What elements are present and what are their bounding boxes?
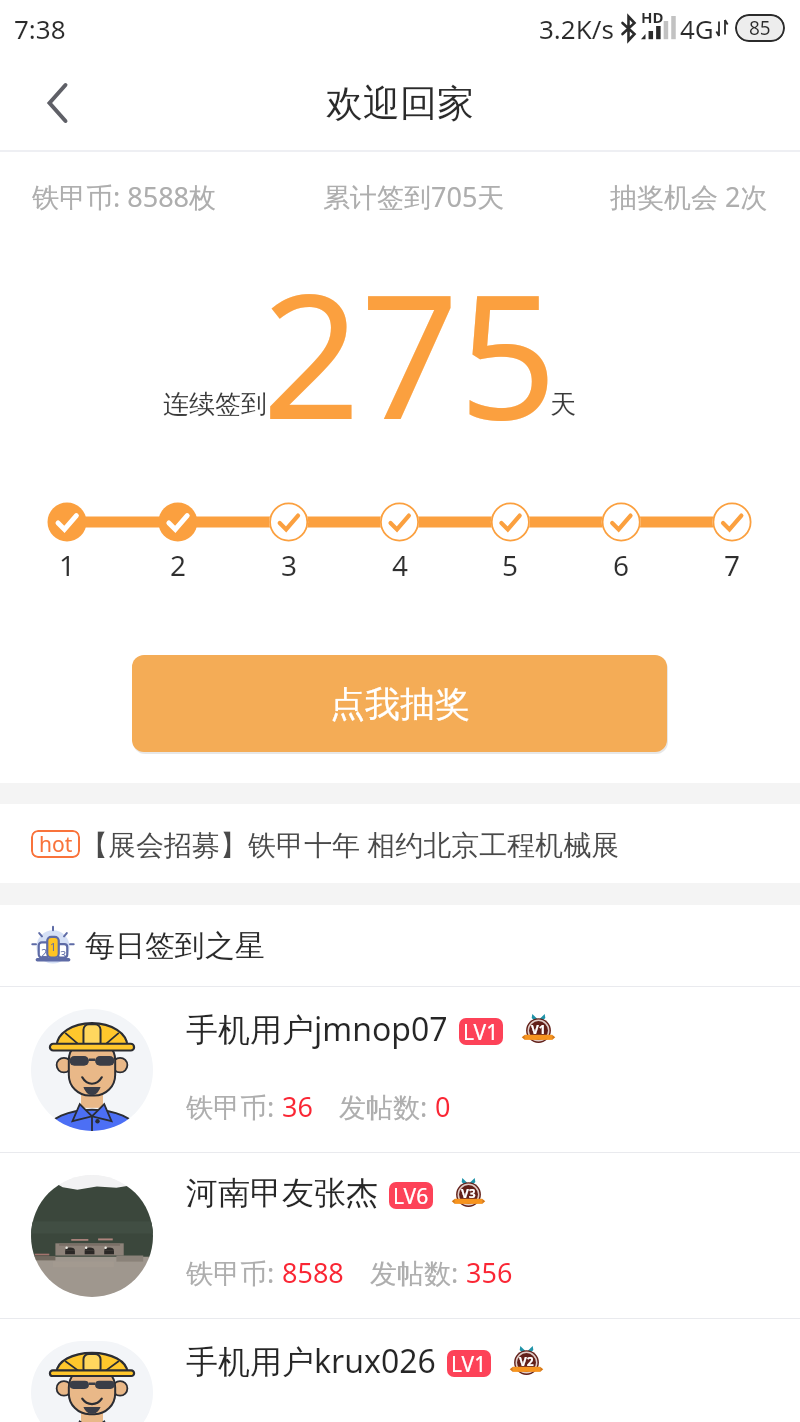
staticText: 抽奖机会 2次: [610, 178, 768, 215]
staticText: 手机用户krux026: [186, 1339, 436, 1383]
staticText: 铁甲币:: [186, 1088, 282, 1125]
staticText: HD: [641, 7, 664, 27]
staticText: 4: [392, 546, 409, 584]
staticText: 天: [550, 388, 576, 421]
staticText: V2: [519, 1353, 534, 1369]
staticText: 6: [613, 546, 630, 584]
staticText: 2: [170, 546, 187, 584]
button[interactable]: Back: [12, 58, 102, 148]
staticText: hot: [39, 830, 73, 858]
staticText: LV6: [393, 1182, 429, 1209]
staticText: 356: [466, 1254, 513, 1291]
staticText: 铁甲币: 8588枚: [32, 178, 217, 215]
staticText: 连续签到: [163, 388, 267, 421]
staticText: 5: [502, 546, 519, 584]
staticText: LV1: [463, 1018, 499, 1045]
button[interactable]: 铁甲币:: [0, 1153, 800, 1318]
staticText: 1: [50, 939, 57, 954]
staticText: V3: [461, 1185, 476, 1201]
staticText: 3.2K/s: [539, 11, 614, 46]
staticText: 欢迎回家: [326, 80, 474, 127]
staticText: 8588: [282, 1254, 344, 1291]
staticText: 河南甲友张杰: [186, 1173, 378, 1213]
button[interactable]: 点我抽奖: [132, 655, 667, 752]
staticText: 每日签到之星: [85, 927, 265, 965]
button[interactable]: 铁甲币:: [0, 1319, 800, 1422]
staticText: 铁甲币:: [186, 1254, 282, 1291]
staticText: 2: [41, 945, 48, 960]
staticText: 点我抽奖: [330, 682, 470, 726]
staticText: 1: [59, 546, 76, 584]
staticText: 发帖数:: [370, 1254, 466, 1291]
staticText: V1: [531, 1021, 546, 1037]
staticText: 4G: [680, 11, 714, 46]
staticText: 275: [262, 235, 558, 469]
staticText: LV1: [451, 1350, 487, 1377]
staticText: 累计签到705天: [323, 178, 505, 215]
staticText: 发帖数:: [339, 1088, 435, 1125]
button[interactable]: 铁甲币:: [0, 987, 800, 1152]
staticText: 7: [724, 546, 741, 584]
staticText: 手机用户jmnop07: [186, 1007, 448, 1051]
staticText: 7:38: [14, 11, 66, 46]
staticText: 85: [749, 15, 771, 41]
button[interactable]: hot: [0, 804, 800, 883]
staticText: 36: [282, 1088, 313, 1125]
staticText: 3: [281, 546, 298, 584]
staticText: 0: [435, 1088, 451, 1125]
staticText: 3: [60, 947, 67, 962]
staticText: 【展会招募】铁甲十年 相约北京工程机械展: [80, 825, 620, 863]
